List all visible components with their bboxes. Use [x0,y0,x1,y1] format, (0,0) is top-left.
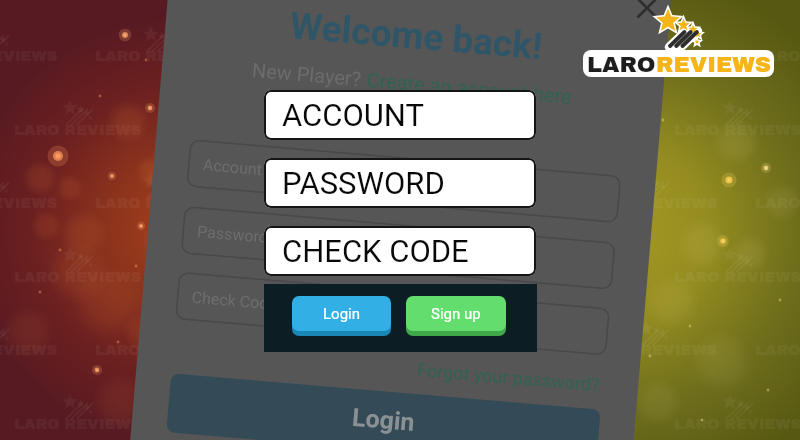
staticText: Forgot your password? [416,359,601,395]
button[interactable]: Login [292,296,391,336]
staticText: PASSWORD [282,165,445,201]
staticText: Create an account here [366,68,573,108]
staticText: LARO [587,52,656,76]
button[interactable]: PASSWORD [264,158,536,208]
staticText: Login [323,305,360,323]
button[interactable]: Laro Reviews [583,50,774,77]
button[interactable]: Sign up [406,296,506,336]
staticText: CHECK CODE [282,233,469,269]
staticText: ACCOUNT [282,97,425,133]
button[interactable]: CHECK CODE [264,226,536,276]
staticText: Password [196,222,269,247]
staticText: New Player? [251,58,368,91]
button[interactable]: ACCOUNT [264,90,536,140]
staticText: Check Code [191,288,278,314]
staticText: REVIEWS [656,52,771,76]
staticText: Login [351,403,416,437]
staticText: Welcome back! [288,4,544,68]
staticText: Sign up [431,305,481,323]
staticText: Account [202,155,264,179]
button[interactable]: Close [636,0,658,19]
